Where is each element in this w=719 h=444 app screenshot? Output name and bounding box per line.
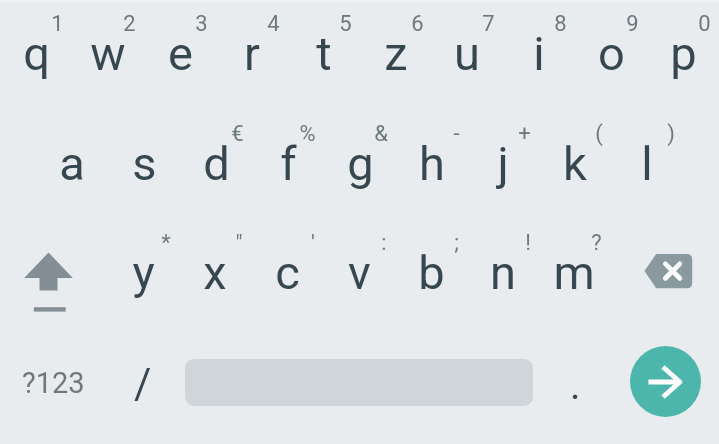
button[interactable]: y [107,221,179,331]
staticText: v [348,245,371,300]
staticText: h [419,136,445,191]
button[interactable]: i [503,2,575,112]
staticText: c [275,245,300,300]
staticText: & [374,121,388,147]
staticText: % [299,121,316,147]
staticText: s [132,136,157,191]
staticText: " [235,230,243,256]
staticText: n [490,245,516,300]
button[interactable]: Backspace [610,221,719,331]
staticText: z [384,26,408,81]
staticText: p [670,26,697,81]
button[interactable]: h [396,112,468,222]
staticText: 2 [123,11,136,37]
button[interactable]: t [288,2,360,112]
button[interactable]: b [395,221,467,331]
button[interactable]: z [360,2,432,112]
staticText: w [90,26,126,81]
staticText: 3 [195,11,208,37]
button[interactable]: / [107,332,179,444]
staticText: € [231,121,244,147]
staticText: 9 [626,11,639,37]
button[interactable]: q [0,2,72,112]
staticText: ; [454,230,459,256]
staticText: x [203,245,227,300]
staticText: r [244,26,260,81]
button[interactable]: g [324,112,396,222]
button[interactable]: . [539,332,611,444]
staticText: y [132,245,155,300]
button[interactable]: n [467,221,539,331]
staticText: m [553,245,595,300]
staticText: i [533,26,545,81]
button[interactable]: Shift [0,221,107,331]
button[interactable]: s [108,112,180,222]
staticText: l [641,136,653,191]
staticText: k [563,136,587,191]
button[interactable]: f [252,112,324,222]
staticText: ? [591,230,602,256]
button[interactable]: d [180,112,252,222]
staticText: * [161,230,171,256]
staticText: 4 [267,11,280,37]
button[interactable]: a [36,112,108,222]
button[interactable]: j [467,112,539,222]
staticText: 6 [411,11,424,37]
staticText: u [454,26,480,81]
staticText: 1 [51,11,64,37]
staticText: - [453,121,460,147]
staticText: : [381,230,387,256]
staticText: 7 [482,11,495,37]
staticText: g [347,136,374,191]
staticText: 5 [339,11,352,37]
button[interactable]: r [216,2,288,112]
button[interactable]: Enter [630,346,701,417]
button[interactable]: k [539,112,611,222]
staticText: ' [311,230,315,256]
staticText: j [497,136,509,191]
staticText: d [203,136,230,191]
staticText: e [168,26,193,81]
staticText: / [134,359,152,408]
staticText: ( [595,121,603,147]
staticText: 8 [554,11,567,37]
button[interactable]: w [72,2,144,112]
button[interactable]: o [575,2,647,112]
staticText: o [598,26,625,81]
button[interactable]: e [144,2,216,112]
button[interactable]: p [647,2,719,112]
staticText: ?123 [22,366,85,400]
button[interactable]: c [251,221,323,331]
button[interactable]: x [179,221,251,331]
button[interactable]: ?123 [0,332,107,444]
staticText: . [570,362,581,409]
button[interactable]: u [431,2,503,112]
staticText: ) [667,121,675,147]
button[interactable]: l [611,112,683,222]
staticText: f [280,136,297,191]
staticText: t [316,26,332,81]
staticText: + [518,121,531,147]
staticText: a [59,136,85,191]
staticText: q [23,26,50,81]
staticText: ! [525,230,531,256]
staticText: b [418,245,445,300]
button[interactable]: v [323,221,395,331]
button[interactable]: m [538,221,610,331]
staticText: 0 [698,11,711,37]
